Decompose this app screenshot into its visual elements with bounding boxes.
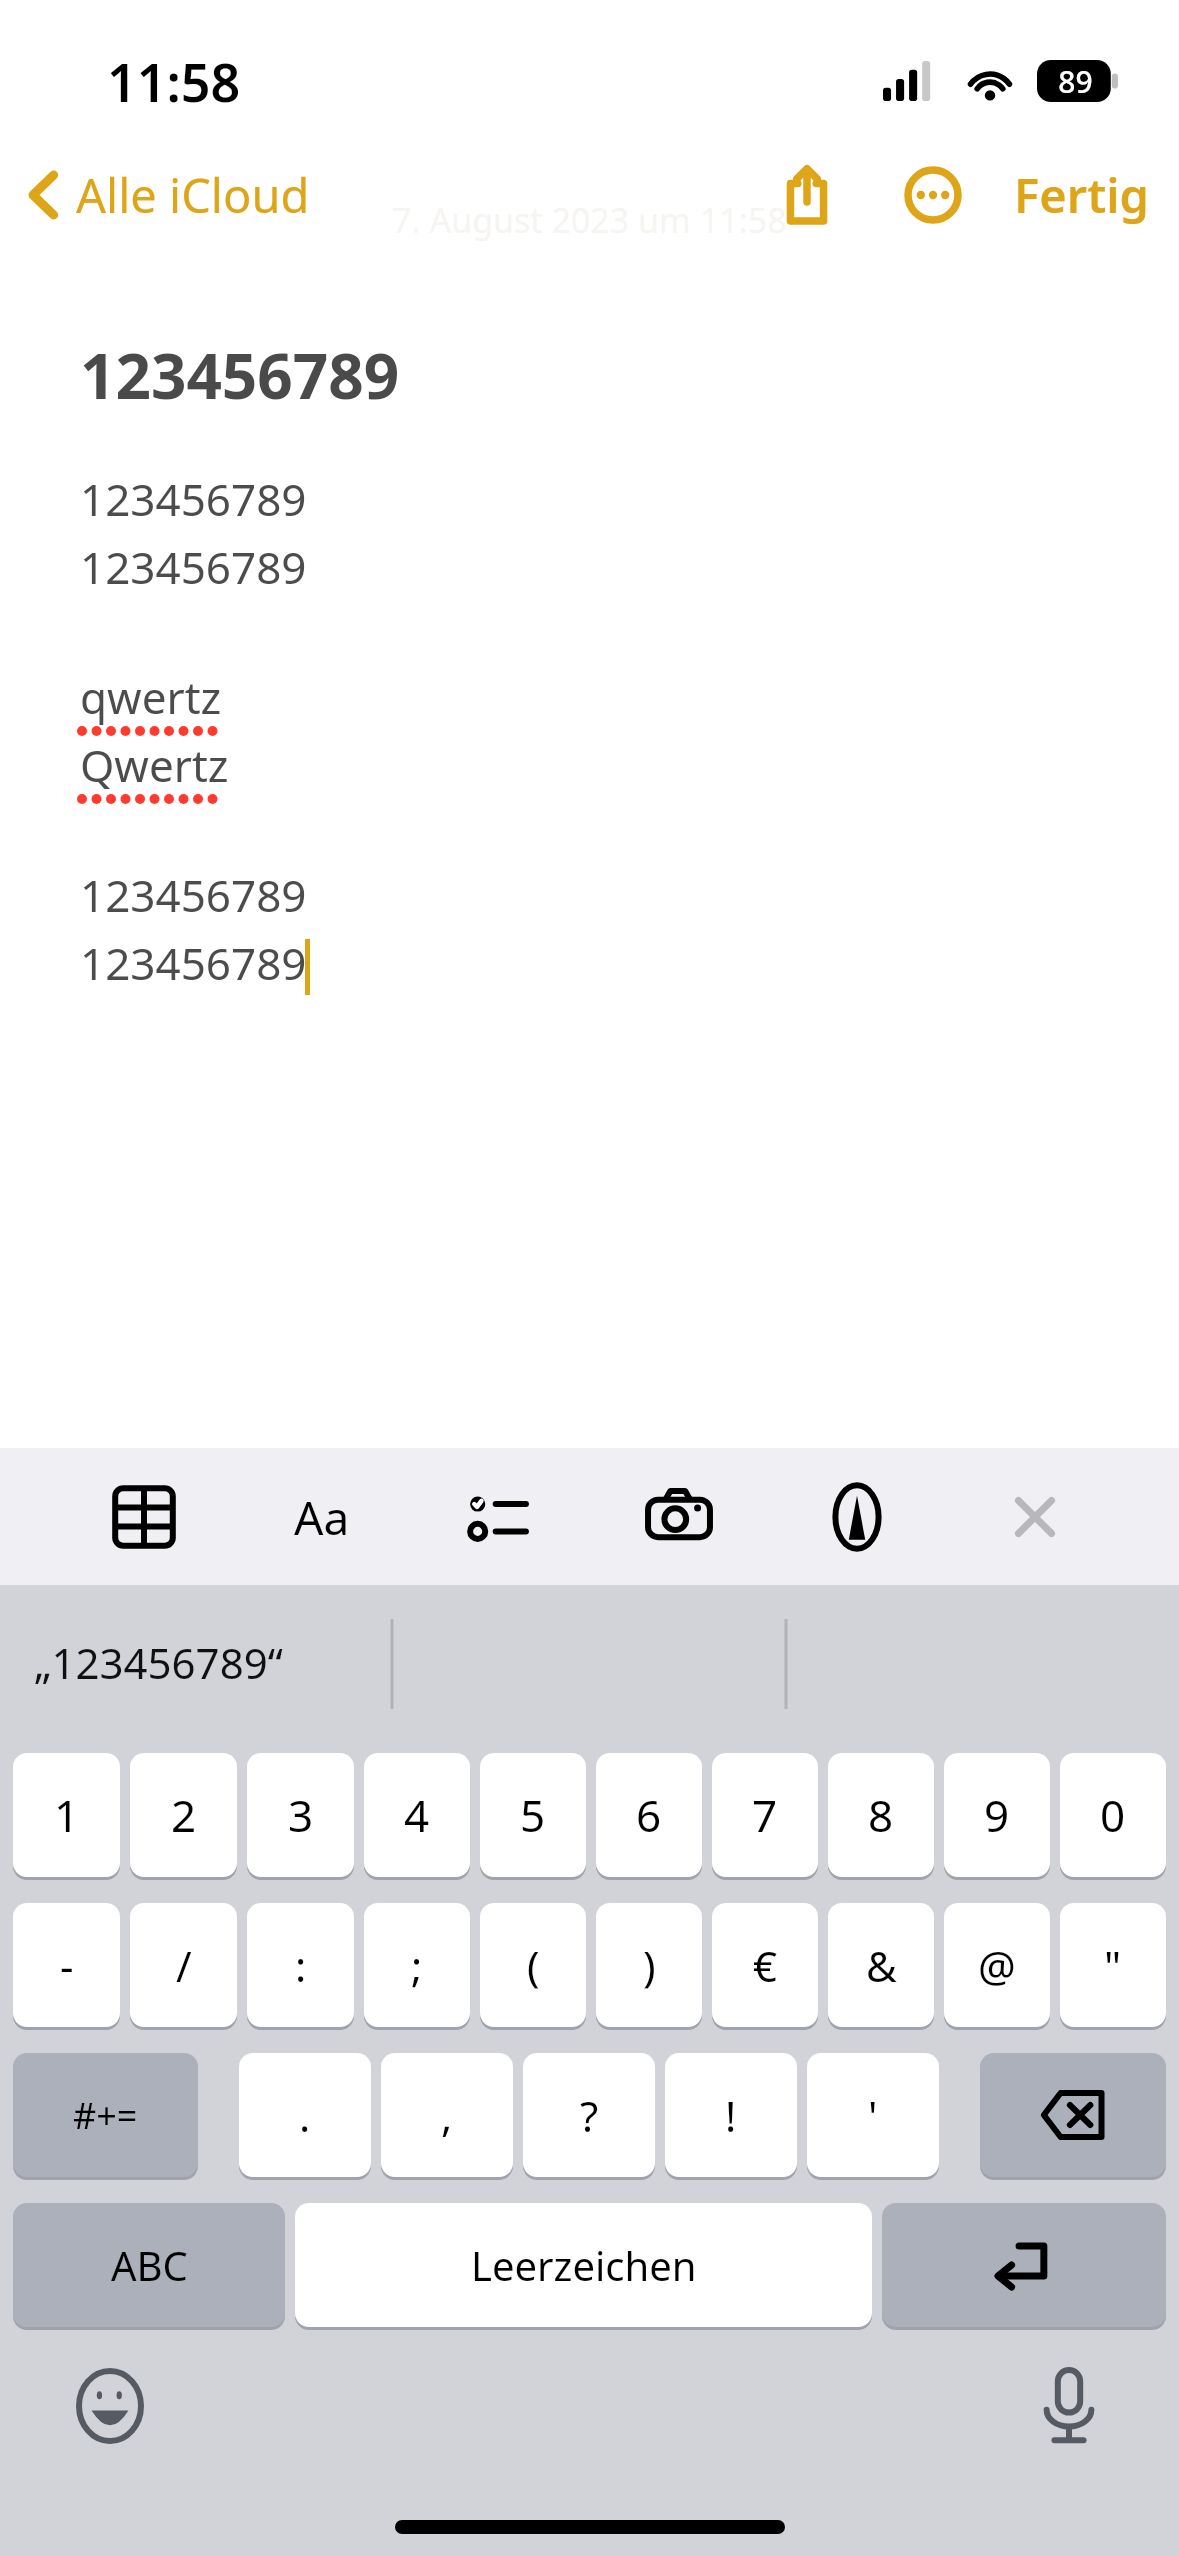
button[interactable]: Schliessen [999,1481,1071,1553]
button[interactable]: @ [944,1903,1050,2027]
staticText: ABC [111,2238,188,2292]
staticText: Fertig [1014,163,1149,227]
staticText: 9 [984,1785,1010,1845]
staticText: 89 [1058,61,1093,102]
button[interactable]: 8 [828,1753,934,1877]
button[interactable]: Tabelle [108,1481,180,1553]
button[interactable]: Leerzeichen [295,2203,872,2327]
staticText: „123456789“ [34,1634,283,1691]
staticText: 4 [404,1785,430,1845]
button[interactable]: #+= [13,2053,198,2177]
staticText: ! [725,2087,737,2144]
button[interactable]: : [247,1903,354,2027]
button[interactable]: 7 [712,1753,818,1877]
button[interactable]: 5 [480,1753,586,1877]
button[interactable]: 0 [1060,1753,1166,1877]
staticText: , [441,2087,453,2144]
staticText: qwertz [80,667,222,727]
staticText: ; [411,1937,423,1994]
button[interactable]: ABC [13,2203,285,2327]
button[interactable]: Emoji [70,2366,150,2446]
staticText: ( [527,1937,540,1994]
button[interactable]: Diktieren [1029,2366,1109,2446]
staticText: € [753,1937,778,1994]
staticText: 1 [54,1785,80,1845]
button[interactable]: " [1060,1903,1166,2027]
button[interactable]: / [130,1903,237,2027]
button[interactable]: Mehr [890,152,976,238]
staticText: 5 [520,1785,546,1845]
button[interactable]: Checkliste [464,1481,536,1553]
staticText: #+= [73,2091,138,2140]
button[interactable]: Rücktaste [980,2053,1166,2177]
staticText: Alle iCloud [76,163,310,227]
button[interactable]: ? [523,2053,655,2177]
staticText: : [295,1937,307,1994]
button[interactable]: Markierung [821,1481,893,1553]
button[interactable]: Teilen [764,152,850,238]
staticText: 8 [868,1785,894,1845]
staticText: Aa [294,1486,350,1549]
button[interactable]: ( [480,1903,586,2027]
button[interactable]: & [828,1903,934,2027]
button[interactable]: 1 [13,1753,120,1877]
button[interactable]: Format [286,1481,358,1553]
button[interactable]: Alle iCloud [22,163,310,227]
staticText: - [60,1937,74,1994]
staticText: " [1104,1937,1122,1994]
button[interactable]: 4 [364,1753,470,1877]
button[interactable]: ! [665,2053,797,2177]
staticText: ? [580,2087,599,2144]
button[interactable]: Zeilenumbruch [882,2203,1166,2327]
button[interactable]: Kamera [643,1481,715,1553]
staticText: 123456789 [80,537,307,597]
staticText: Qwertz [80,735,229,795]
staticText: 123456789 [80,469,307,529]
button[interactable]: ; [364,1903,470,2027]
staticText: ) [643,1937,656,1994]
staticText: 11:58 [107,46,241,117]
staticText: 7. August 2023 um 11:58 [392,197,787,243]
staticText: & [866,1937,897,1994]
staticText: @ [978,1937,1016,1994]
staticText: 6 [636,1785,662,1845]
staticText: . [299,2087,311,2144]
staticText: 123456789 [80,865,307,925]
staticText: / [176,1937,192,1994]
button[interactable]: 9 [944,1753,1050,1877]
button[interactable]: - [13,1903,120,2027]
button[interactable]: € [712,1903,818,2027]
button[interactable]: , [381,2053,513,2177]
staticText: 123456789 [80,933,307,993]
button[interactable]: . [239,2053,371,2177]
staticText: 3 [288,1785,314,1845]
staticText: 0 [1100,1785,1126,1845]
button[interactable]: ' [807,2053,939,2177]
staticText: 2 [171,1785,197,1845]
button[interactable]: 6 [596,1753,702,1877]
staticText: 123456789 [80,333,400,417]
button[interactable]: 2 [130,1753,237,1877]
staticText: ' [868,2087,878,2144]
button[interactable]: Fertig [1006,149,1157,241]
staticText: 7 [752,1785,778,1845]
button[interactable]: ) [596,1903,702,2027]
button[interactable]: 3 [247,1753,354,1877]
staticText: Leerzeichen [471,2238,697,2292]
